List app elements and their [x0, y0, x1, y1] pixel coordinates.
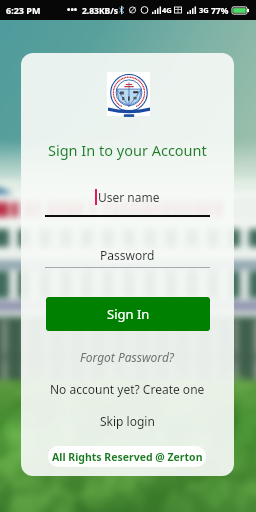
button[interactable]: Sign In [46, 297, 210, 331]
staticText: No account yet? Create one [50, 381, 205, 397]
staticText: User name [98, 189, 160, 205]
staticText: 4G [162, 5, 172, 15]
button[interactable]: Forgot Password? [80, 349, 175, 365]
staticText: Forgot Password? [80, 349, 175, 365]
staticText: Sign In to your Account [48, 140, 207, 160]
button[interactable]: Skip login [100, 413, 155, 429]
staticText: Password [100, 247, 155, 263]
staticText: 3G [199, 5, 209, 15]
staticText: All Rights Reserved @ Zerton [52, 450, 203, 464]
button[interactable]: User name [45, 189, 210, 219]
staticText: 77% [211, 5, 229, 17]
staticText: 6:23 PM [6, 4, 41, 16]
staticText: 2.83KB/s [82, 5, 119, 17]
staticText: ••• [67, 3, 78, 15]
button[interactable]: All Rights Reserved @ Zerton [48, 446, 206, 467]
staticText: Sign In [107, 305, 150, 323]
button[interactable]: Password [45, 247, 210, 273]
button[interactable]: No account yet? Create one [50, 381, 205, 397]
staticText: Skip login [100, 413, 155, 429]
